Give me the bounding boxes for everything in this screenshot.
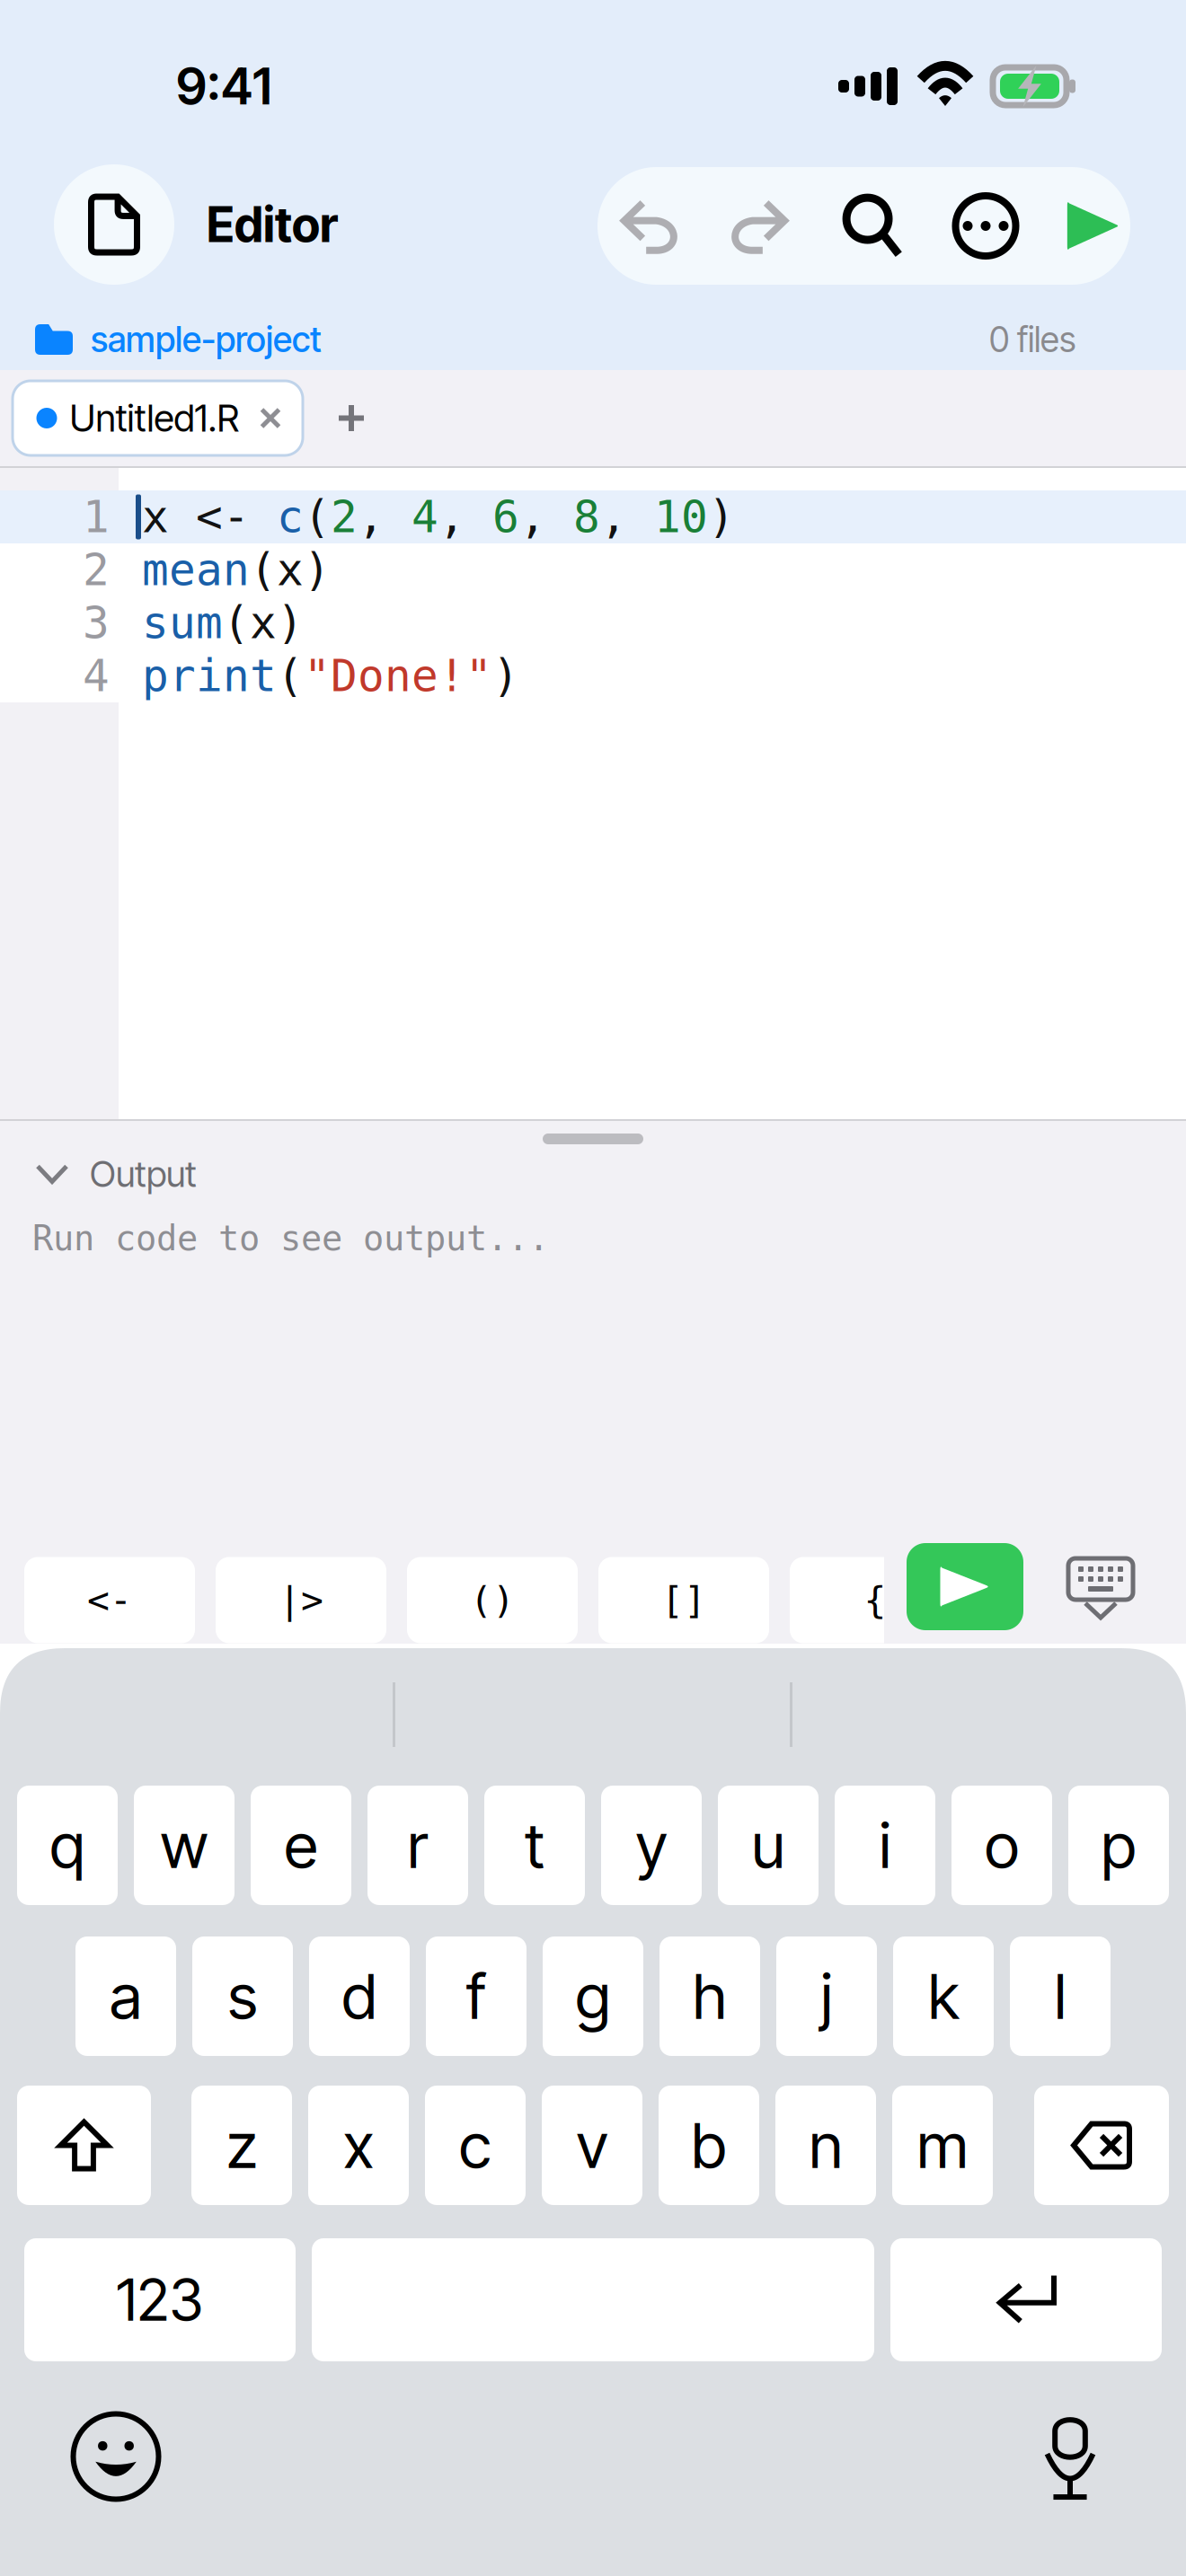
button[interactable]: f [426, 1936, 527, 2056]
staticText: o [985, 1808, 1019, 1883]
staticText: s [228, 1959, 257, 2034]
button[interactable]: n [775, 2086, 876, 2205]
staticText: <- [87, 1578, 132, 1622]
staticText: { [864, 1578, 886, 1622]
staticText: i [879, 1808, 891, 1883]
staticText: Run code to see output... [32, 1218, 549, 1258]
button[interactable]: c [425, 2086, 526, 2205]
staticText: 9:41 [176, 56, 272, 117]
staticText: x [343, 2108, 374, 2183]
staticText: r [407, 1808, 428, 1883]
button[interactable]: a [75, 1936, 176, 2056]
button[interactable]: i [835, 1786, 935, 1905]
staticText: n [809, 2108, 842, 2183]
button[interactable]: l [1010, 1936, 1111, 2056]
staticText: 2 [331, 491, 358, 543]
staticText: (x) [223, 597, 304, 649]
button[interactable]: Editor [54, 164, 521, 285]
staticText: ( [304, 491, 331, 543]
staticText: , [600, 491, 654, 543]
staticText: 8 [573, 491, 600, 543]
button[interactable]: [] [598, 1557, 769, 1643]
button[interactable]: h [659, 1936, 760, 2056]
staticText: d [342, 1959, 377, 2034]
button[interactable]: s [192, 1936, 293, 2056]
staticText: 2 [83, 544, 110, 596]
button[interactable]: w [134, 1786, 235, 1905]
staticText: 10 [654, 491, 708, 543]
button[interactable]: Run [907, 1543, 1023, 1630]
button[interactable]: b [659, 2086, 759, 2205]
button[interactable]: y [601, 1786, 702, 1905]
button[interactable]: Dictate [1023, 2410, 1117, 2503]
button[interactable]: g [543, 1936, 643, 2056]
staticText: w [160, 1808, 208, 1883]
staticText: c [277, 491, 304, 543]
button[interactable]: New file [326, 381, 376, 455]
staticText: l [1054, 1959, 1066, 2034]
button[interactable]: Redo [707, 167, 811, 285]
button[interactable]: Run [1041, 167, 1146, 285]
button[interactable]: o [951, 1786, 1052, 1905]
button[interactable]: r [367, 1786, 468, 1905]
button[interactable]: p [1068, 1786, 1169, 1905]
staticText: () [470, 1578, 515, 1622]
button[interactable]: d [309, 1936, 410, 2056]
staticText: z [226, 2108, 257, 2183]
button[interactable]: Untitled1.R [13, 381, 303, 455]
staticText: g [575, 1959, 611, 2034]
button[interactable]: z [191, 2086, 292, 2205]
button[interactable]: t [484, 1786, 585, 1905]
button[interactable]: More [934, 167, 1038, 285]
staticText: [] [661, 1578, 706, 1622]
button[interactable]: Space [312, 2238, 874, 2361]
staticText: , [519, 491, 573, 543]
button[interactable]: () [407, 1557, 578, 1643]
staticText: 6 [492, 491, 519, 543]
staticText: k [928, 1959, 959, 2034]
button[interactable]: m [892, 2086, 993, 2205]
button[interactable]: Undo [597, 167, 702, 285]
staticText: print [142, 650, 277, 702]
staticText: , [358, 491, 412, 543]
button[interactable]: Output [38, 1151, 397, 1197]
staticText: e [284, 1808, 318, 1883]
button[interactable]: <- [24, 1557, 195, 1643]
staticText: ) [708, 491, 735, 543]
button[interactable]: Return [890, 2238, 1162, 2361]
staticText: 0 files [989, 318, 1075, 361]
staticText: ) [492, 650, 519, 702]
staticText: Untitled1.R [70, 396, 239, 441]
staticText: v [576, 2108, 608, 2183]
button[interactable]: Search [820, 167, 925, 285]
button[interactable]: Hide keyboard [1066, 1556, 1136, 1620]
button[interactable]: Emoji [69, 2410, 163, 2503]
button[interactable]: Delete [1034, 2086, 1169, 2205]
staticText: Output [90, 1152, 197, 1196]
button[interactable]: |> [216, 1557, 386, 1643]
button[interactable]: { [790, 1557, 960, 1643]
staticText: p [1101, 1808, 1136, 1883]
staticText: 4 [412, 491, 438, 543]
button[interactable]: e [251, 1786, 351, 1905]
button[interactable]: u [718, 1786, 819, 1905]
button[interactable]: q [17, 1786, 118, 1905]
staticText: m [917, 2108, 968, 2183]
button[interactable]: v [542, 2086, 642, 2205]
staticText: |> [279, 1578, 323, 1622]
button[interactable]: Shift [17, 2086, 151, 2205]
staticText: 123 [116, 2265, 204, 2335]
staticText: Editor [207, 196, 338, 253]
staticText: h [693, 1959, 727, 2034]
staticText: 3 [83, 597, 110, 649]
staticText: j [821, 1959, 832, 2034]
button[interactable]: k [893, 1936, 994, 2056]
button[interactable]: x [308, 2086, 409, 2205]
staticText: "Done!" [304, 650, 492, 702]
staticText: 1 [83, 491, 110, 543]
button[interactable]: 123 [24, 2238, 296, 2361]
staticText: sum [142, 597, 223, 649]
staticText: x [142, 491, 196, 543]
staticText: 4 [83, 650, 110, 702]
button[interactable]: j [776, 1936, 877, 2056]
